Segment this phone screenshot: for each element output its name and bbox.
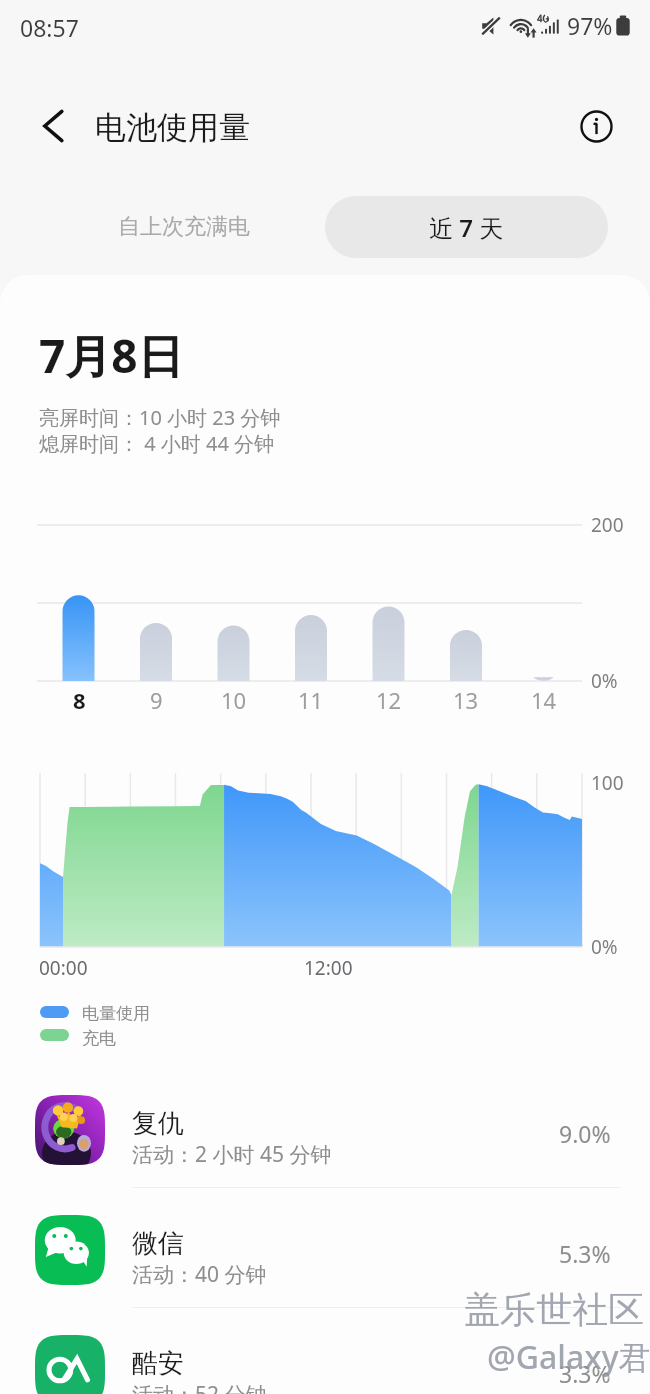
staticText: 充电 (82, 1028, 116, 1049)
staticText: 3.3% (559, 1358, 611, 1389)
button[interactable]: 复仇 (0, 1087, 650, 1207)
staticText: 11 (298, 685, 324, 715)
button[interactable]: Information (572, 102, 620, 150)
staticText: 7月8日 (39, 324, 184, 387)
staticText: 8 (73, 685, 86, 715)
staticText: 00:00 (39, 955, 88, 981)
staticText: 电量使用 (82, 1003, 150, 1024)
staticText: 08:57 (20, 12, 79, 43)
staticText: 14 (531, 685, 557, 715)
staticText: 9.0% (559, 1118, 611, 1149)
staticText: @Galaxy君 (487, 1335, 650, 1379)
button[interactable]: 近 7 天 (325, 196, 608, 258)
staticText: 100 (591, 770, 624, 796)
staticText: 近 7 天 (429, 211, 504, 244)
staticText: 盖乐世社区 (466, 1289, 646, 1334)
staticText: @Galaxy君 (489, 1337, 650, 1381)
staticText: 5.3% (559, 1238, 611, 1269)
staticText: 97% (567, 10, 613, 41)
staticText: 12 (376, 685, 402, 715)
staticText: 0% (591, 934, 618, 960)
staticText: 活动：52 分钟 (132, 1380, 267, 1394)
button[interactable]: Back (21, 94, 85, 158)
staticText: 微信 (132, 1227, 184, 1260)
staticText: 0% (591, 668, 618, 694)
staticText: 活动：2 小时 45 分钟 (132, 1140, 332, 1169)
staticText: 10 (221, 685, 247, 715)
staticText: 盖乐世社区 (464, 1287, 644, 1332)
button[interactable]: 酷安 (0, 1327, 650, 1394)
staticText: 熄屏时间： 4 小时 44 分钟 (39, 430, 275, 457)
button[interactable]: 微信 (0, 1207, 650, 1327)
staticText: 电池使用量 (95, 108, 250, 147)
staticText: 酷安 (132, 1347, 184, 1380)
staticText: 活动：40 分钟 (132, 1260, 267, 1289)
staticText: 12:00 (304, 955, 353, 981)
staticText: 亮屏时间：10 小时 23 分钟 (39, 404, 281, 431)
staticText: 复仇 (132, 1107, 184, 1140)
staticText: 200 (591, 512, 624, 538)
staticText: 自上次充满电 (118, 213, 250, 241)
button[interactable]: 自上次充满电 (51, 196, 317, 258)
staticText: 9 (150, 685, 163, 715)
staticText: 13 (453, 685, 479, 715)
